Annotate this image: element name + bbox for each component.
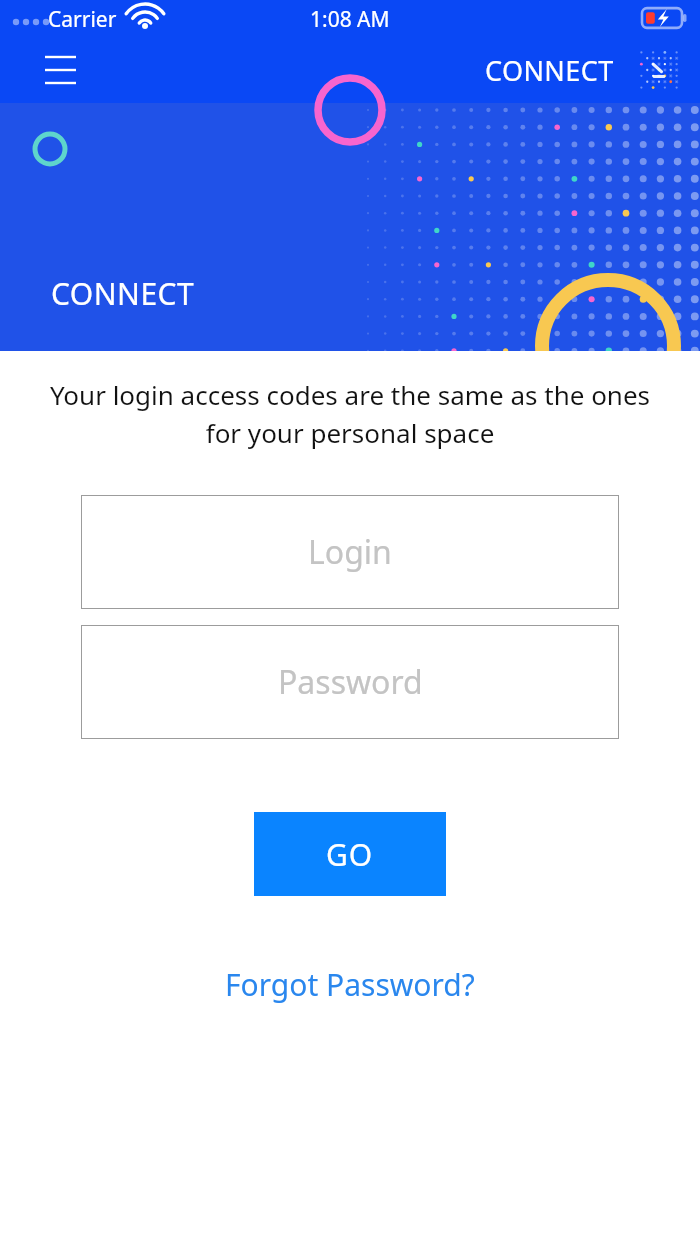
staticText: Your login access codes are the same as … [40,377,660,450]
staticText: Forgot Password? [225,964,475,1005]
staticText: Login [308,530,392,574]
staticText: CONNECT [485,52,614,89]
staticText: GO [326,834,374,875]
staticText: Carrier [48,5,117,34]
button[interactable]: Forgot Password? [213,958,487,1011]
button[interactable]: Login [81,495,619,609]
button[interactable]: Open navigation menu [30,46,90,94]
staticText: 1:08 AM [310,5,390,34]
staticText: Password [278,660,423,704]
button[interactable]: CONNECT [485,39,690,101]
button[interactable]: GO [254,812,446,896]
staticText: CONNECT [51,273,195,314]
button[interactable]: Password [81,625,619,739]
